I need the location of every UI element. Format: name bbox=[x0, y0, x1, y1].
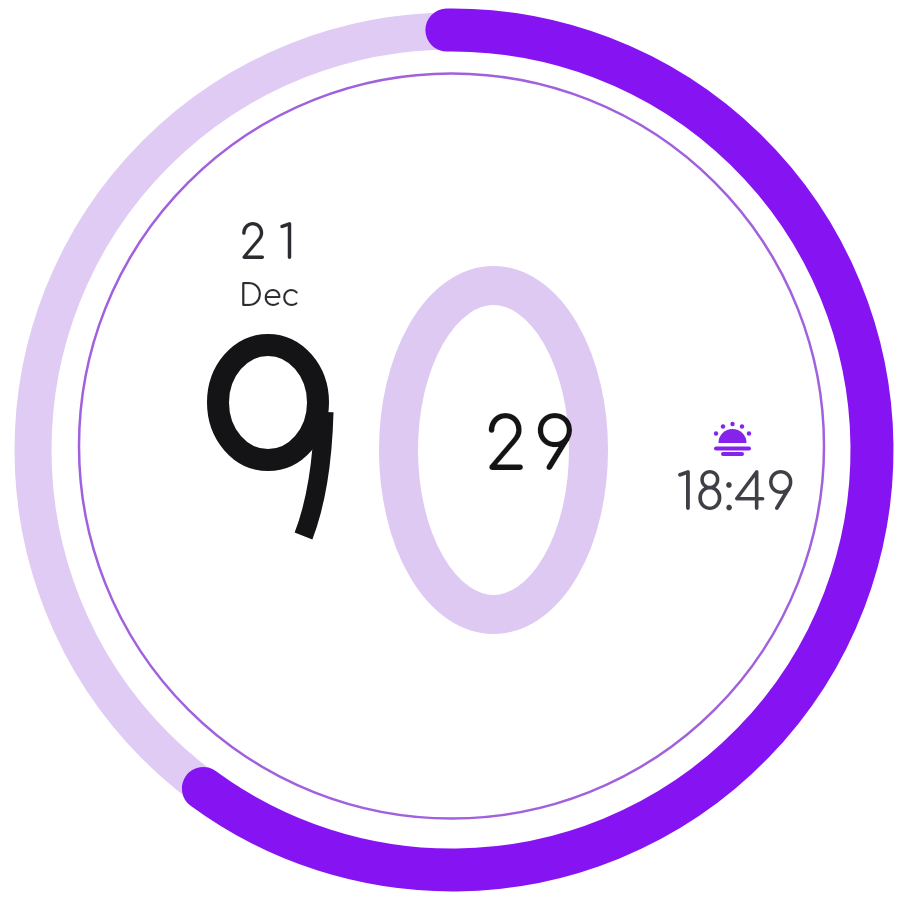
staticText: Dec bbox=[239, 279, 300, 314]
staticText: 21 bbox=[239, 218, 309, 270]
button[interactable] bbox=[672, 415, 800, 515]
staticText: 18:49 bbox=[676, 466, 796, 522]
staticText: 29 bbox=[484, 406, 585, 487]
